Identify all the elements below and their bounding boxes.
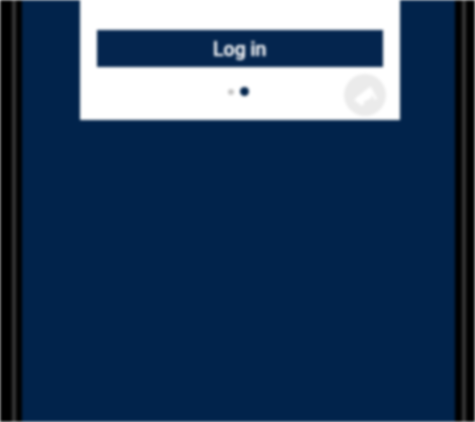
button[interactable]: Log in (97, 30, 383, 67)
button[interactable]: Send feedback (344, 74, 386, 116)
staticText: Log in (213, 38, 267, 61)
